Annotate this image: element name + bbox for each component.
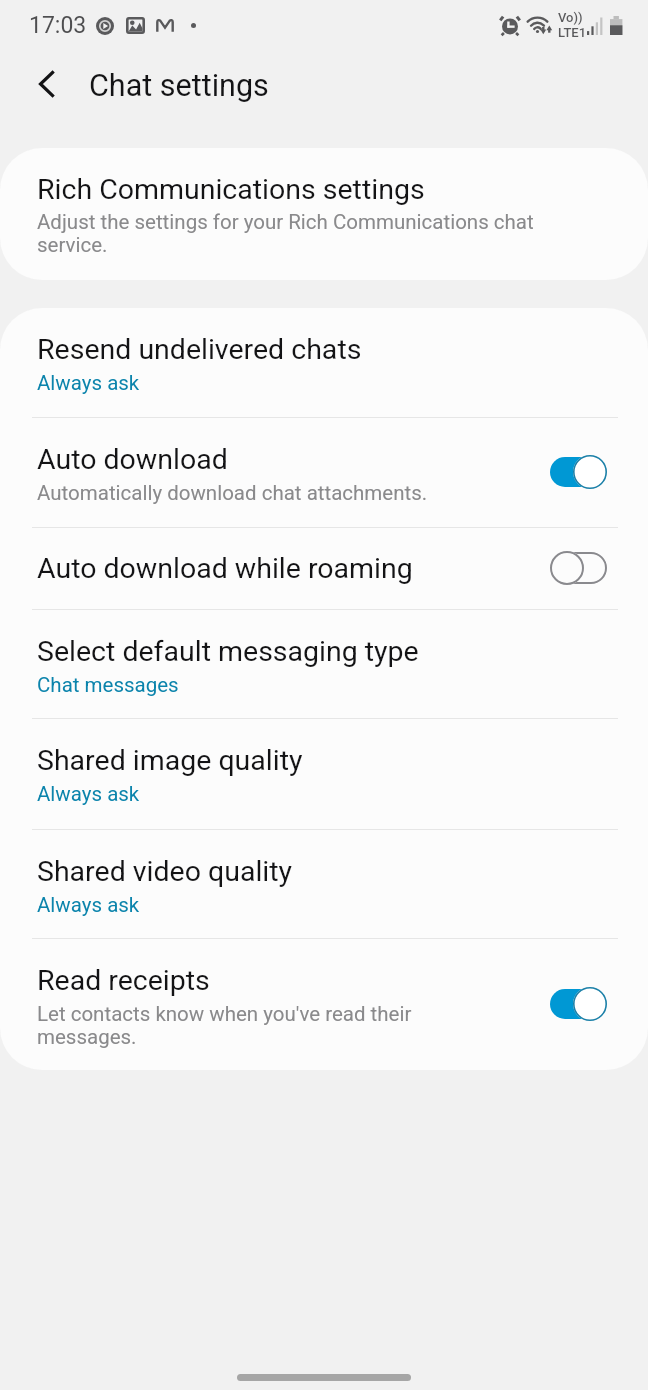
button[interactable]: Shared image quality	[0, 719, 648, 829]
button[interactable]: Auto download	[0, 418, 648, 527]
staticText: Always ask	[37, 783, 140, 806]
staticText: Let contacts know when you've read their…	[37, 1003, 497, 1049]
button[interactable]: Switch on	[545, 978, 611, 1030]
staticText: Auto download	[37, 443, 228, 476]
button[interactable]: Select default messaging type	[0, 610, 648, 718]
staticText: Always ask	[37, 372, 140, 395]
staticText: Shared image quality	[37, 744, 303, 777]
staticText: Chat messages	[37, 674, 179, 697]
button[interactable]: Switch on	[545, 446, 611, 498]
staticText: Always ask	[37, 894, 140, 917]
button[interactable]: Resend undelivered chats	[0, 308, 648, 417]
staticText: Rich Communications settings	[37, 173, 425, 206]
button[interactable]: Navigate up	[13, 50, 80, 117]
staticText: Resend undelivered chats	[37, 333, 362, 366]
button[interactable]: Read receipts	[0, 939, 648, 1070]
staticText: Automatically download chat attachments.	[37, 482, 428, 505]
staticText: Vo))	[558, 10, 583, 25]
staticText: Adjust the settings for your Rich Commun…	[37, 211, 608, 257]
staticText: Read receipts	[37, 964, 210, 997]
button[interactable]: Switch off	[545, 542, 611, 594]
staticText: Select default messaging type	[37, 635, 419, 668]
staticText: 17:03	[29, 12, 87, 39]
staticText: Shared video quality	[37, 855, 293, 888]
staticText: Auto download while roaming	[37, 552, 413, 585]
staticText: Chat settings	[89, 68, 269, 104]
button[interactable]: Auto download while roaming	[0, 528, 648, 609]
staticText: LTE1	[558, 25, 587, 40]
button[interactable]: Shared video quality	[0, 830, 648, 938]
